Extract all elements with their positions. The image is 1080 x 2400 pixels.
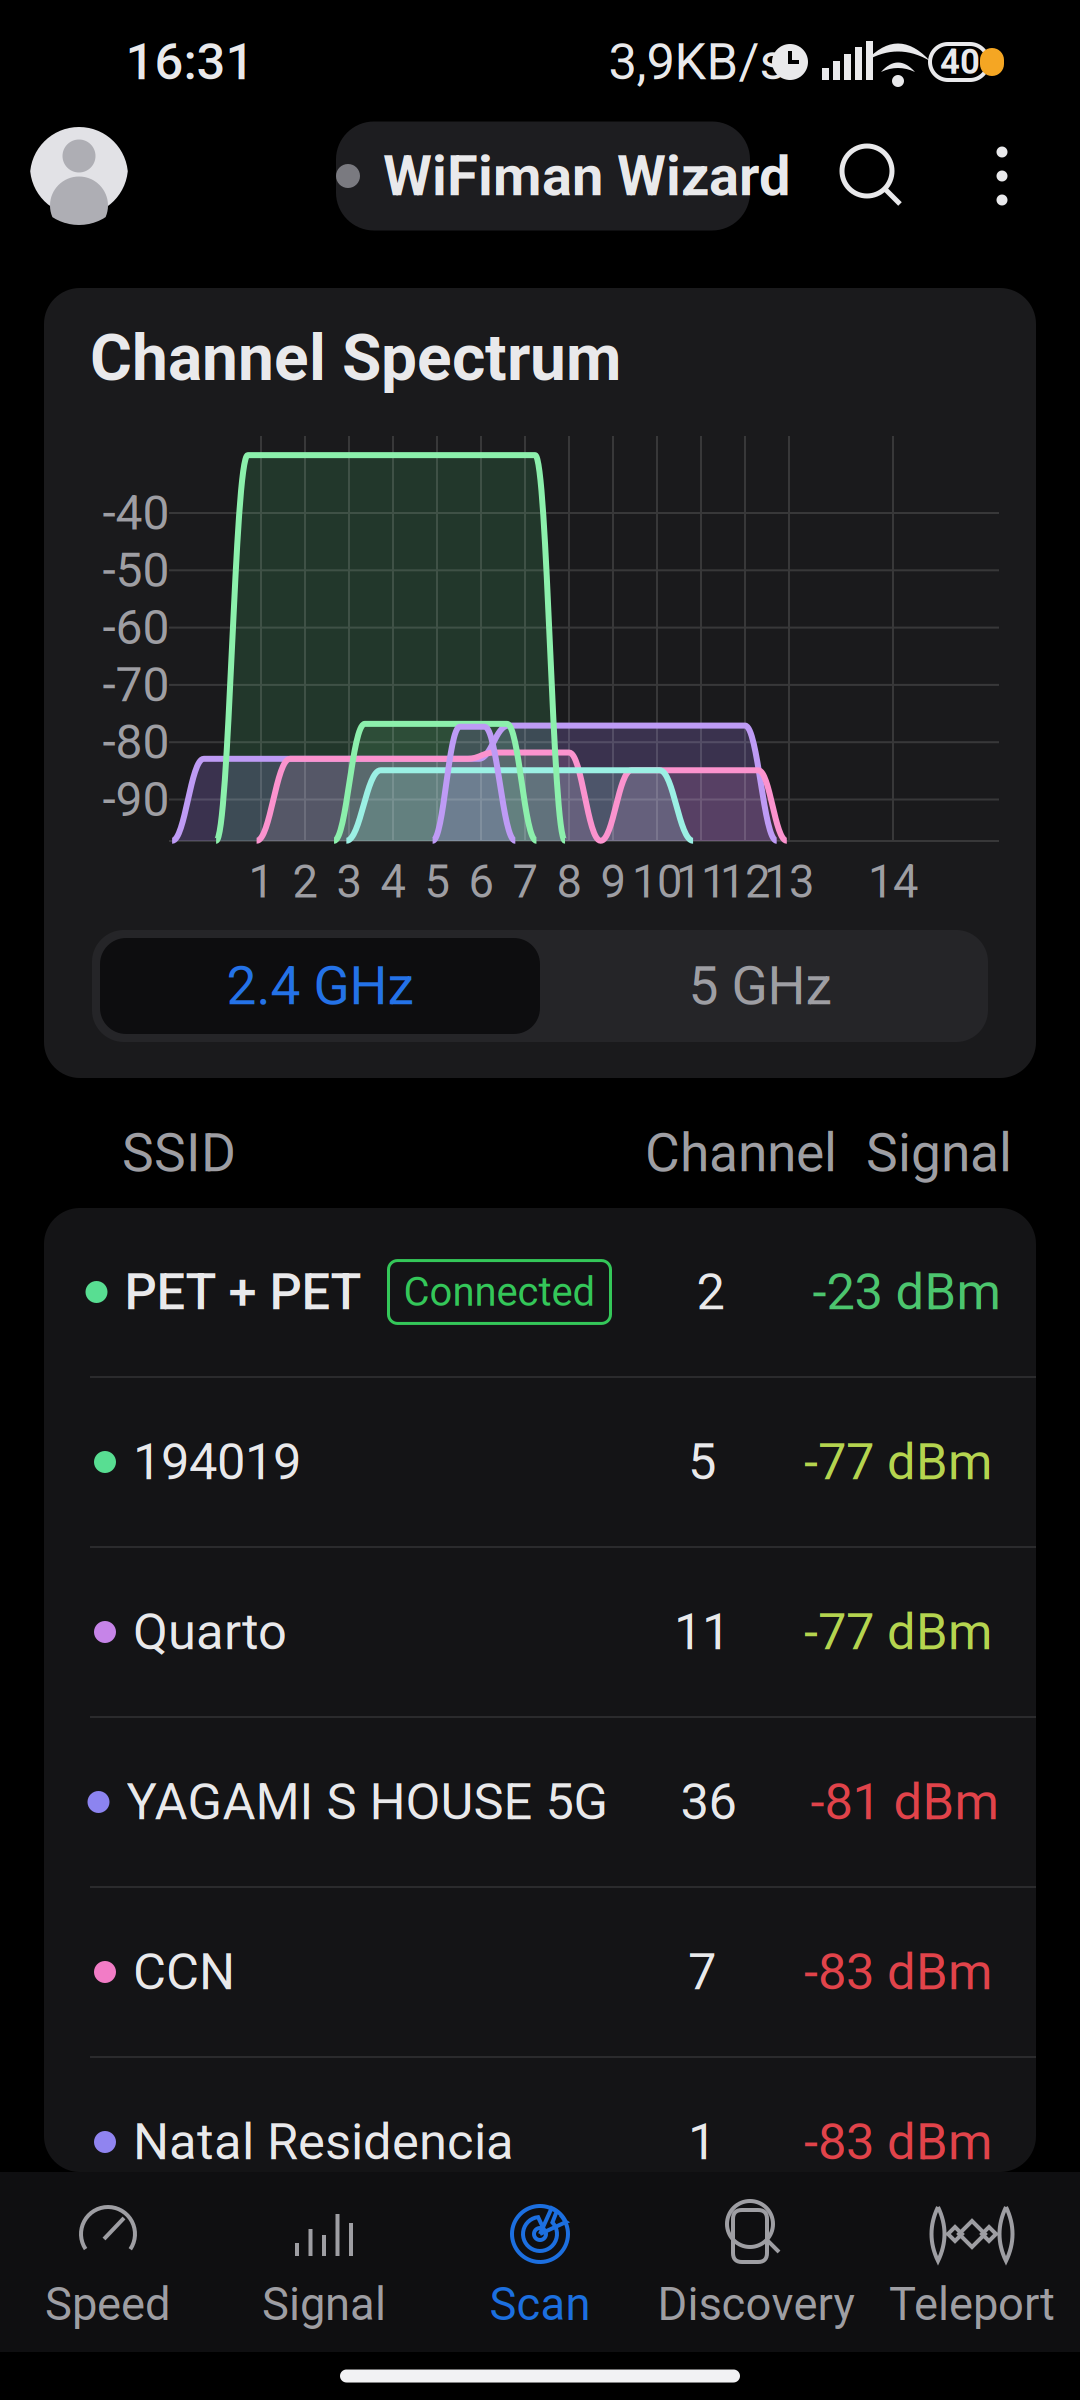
button[interactable]: 2.4 GHz — [100, 938, 540, 1034]
staticText: 2 — [292, 855, 317, 908]
staticText: SSID — [122, 1122, 236, 1184]
staticText: Channel — [645, 1122, 837, 1184]
staticText: 2 — [696, 1262, 724, 1322]
staticText: 1 — [688, 2112, 716, 2172]
staticText: Discovery — [657, 2278, 854, 2331]
staticText: 5 — [688, 1432, 716, 1492]
staticText: 7 — [512, 855, 537, 908]
staticText: 3,9KB/s — [608, 32, 785, 92]
staticText: 2.4 GHz — [226, 955, 413, 1017]
staticText: 7 — [688, 1942, 716, 2002]
staticText: 13 — [764, 855, 814, 908]
staticText: 10 — [632, 855, 682, 908]
staticText: 36 — [680, 1772, 736, 1832]
staticText: Natal Residencia — [133, 2112, 514, 2172]
staticText: Connected — [403, 1269, 595, 1315]
staticText: 194019 — [133, 1432, 301, 1492]
staticText: 40 — [940, 42, 980, 82]
staticText: 1 — [248, 855, 273, 908]
staticText: -90 — [102, 771, 169, 828]
staticText: -83 dBm — [804, 2112, 992, 2172]
button[interactable]: Quarto — [44, 1548, 1036, 1716]
staticText: YAGAMI S HOUSE 5G — [126, 1772, 608, 1832]
staticText: PET + PET — [124, 1262, 361, 1322]
button[interactable]: YAGAMI S HOUSE 5G — [44, 1718, 1036, 1886]
button[interactable]: Profile — [30, 127, 128, 225]
staticText: -81 dBm — [810, 1772, 998, 1832]
button[interactable]: Natal Residencia — [44, 2058, 1036, 2226]
staticText: 6 — [468, 855, 493, 908]
staticText: 8 — [556, 855, 581, 908]
staticText: 3 — [336, 855, 361, 908]
staticText: Channel Spectrum — [90, 320, 621, 395]
staticText: -80 — [102, 714, 169, 770]
staticText: WiFiman Wizard — [383, 143, 791, 209]
staticText: Speed — [45, 2278, 171, 2331]
button[interactable]: Speed — [0, 2172, 216, 2352]
staticText: -77 dBm — [804, 1602, 992, 1662]
staticText: -50 — [102, 542, 169, 598]
staticText: -83 dBm — [804, 1942, 992, 2002]
staticText: 4 — [380, 855, 405, 908]
button[interactable]: 5 GHz — [540, 938, 980, 1034]
button[interactable]: PET + PET — [44, 1208, 1036, 1376]
button[interactable]: Scan — [432, 2172, 648, 2352]
button[interactable]: Teleport — [864, 2172, 1080, 2352]
staticText: 11 — [676, 855, 726, 908]
staticText: -77 dBm — [804, 1432, 992, 1492]
staticText: Signal — [262, 2278, 386, 2331]
staticText: Signal — [866, 1122, 1012, 1184]
button[interactable]: Signal — [216, 2172, 432, 2352]
staticText: 9 — [600, 855, 625, 908]
staticText: Scan — [489, 2278, 590, 2331]
staticText: -23 dBm — [812, 1262, 1000, 1322]
staticText: 5 — [424, 855, 449, 908]
button[interactable]: CCN — [44, 1888, 1036, 2056]
button[interactable]: WiFiman Wizard — [336, 121, 750, 230]
staticText: 12 — [720, 855, 770, 908]
button[interactable]: 194019 — [44, 1378, 1036, 1546]
staticText: 14 — [868, 855, 918, 908]
staticText: 5 GHz — [688, 955, 831, 1017]
staticText: Teleport — [889, 2278, 1055, 2331]
staticText: 11 — [674, 1602, 730, 1662]
button[interactable]: Search — [829, 133, 915, 219]
button[interactable]: More options — [970, 133, 1034, 219]
staticText: -60 — [102, 599, 169, 656]
staticText: CCN — [133, 1942, 235, 2002]
staticText: -40 — [102, 485, 169, 541]
staticText: 16:31 — [125, 32, 254, 92]
staticText: Quarto — [133, 1602, 287, 1662]
button[interactable]: Discovery — [648, 2172, 864, 2352]
staticText: -70 — [102, 657, 169, 713]
